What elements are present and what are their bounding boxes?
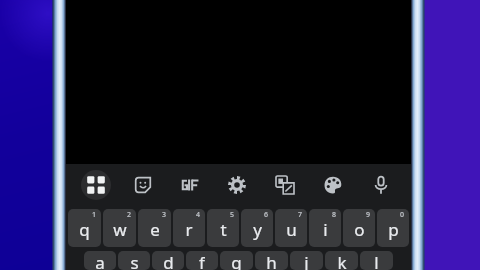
staticText: r [185,218,193,241]
staticText: a [95,251,105,270]
button[interactable]: y [241,209,273,247]
button[interactable]: d [152,251,184,270]
staticText: 0 [400,210,405,220]
button[interactable]: h [255,251,288,270]
button[interactable]: t [207,209,239,247]
button[interactable]: k [325,251,358,270]
button[interactable]: o [343,209,375,247]
button[interactable]: GIF [166,164,213,206]
button[interactable]: Toolbox [72,164,119,206]
button[interactable]: e [138,209,171,247]
button[interactable]: w [103,209,136,247]
staticText: s [130,251,139,270]
button[interactable]: i [309,209,341,247]
staticText: 7 [298,210,303,220]
staticText: q [79,218,90,241]
staticText: 2 [127,210,132,220]
staticText: 1 [92,210,97,220]
button[interactable]: u [275,209,307,247]
staticText: 6 [264,210,269,220]
staticText: 8 [332,210,337,220]
staticText: h [266,251,277,270]
button[interactable]: j [290,251,323,270]
button[interactable]: l [360,251,393,270]
button[interactable]: Stickers [119,164,166,206]
staticText: o [354,218,365,241]
button[interactable]: a [84,251,116,270]
button[interactable]: s [118,251,150,270]
staticText: i [323,218,328,241]
staticText: 3 [162,210,167,220]
staticText: k [337,251,347,270]
staticText: d [163,251,174,270]
staticText: u [286,218,297,241]
button[interactable]: g [220,251,253,270]
staticText: 4 [196,210,201,220]
button[interactable]: Translate [261,164,309,206]
staticText: l [374,251,379,270]
staticText: e [150,218,160,241]
button[interactable]: f [186,251,218,270]
staticText: w [113,218,127,241]
button[interactable]: Themes [309,164,357,206]
staticText: p [388,218,399,241]
staticText: 9 [366,210,371,220]
staticText: 5 [230,210,235,220]
staticText: y [253,218,262,241]
staticText: g [231,251,242,270]
staticText: j [304,251,309,270]
button[interactable]: p [377,209,409,247]
button[interactable]: Settings [213,164,261,206]
button[interactable]: q [68,209,101,247]
staticText: t [220,218,227,241]
button[interactable]: r [173,209,205,247]
button[interactable]: Voice input [357,164,405,206]
staticText: f [199,251,205,270]
